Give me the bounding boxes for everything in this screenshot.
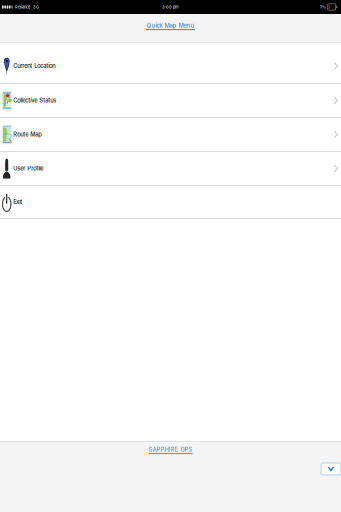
button[interactable]: Exit bbox=[0, 186, 341, 219]
button[interactable]: Route Map bbox=[0, 118, 341, 152]
staticText: Current Location bbox=[13, 62, 55, 69]
button[interactable]: User Profile bbox=[0, 152, 341, 186]
button[interactable]: Quick Map Menu bbox=[146, 22, 195, 30]
staticText: Reliance bbox=[15, 5, 30, 9]
button[interactable]: SAPPHIRE GPS bbox=[148, 446, 192, 454]
staticText: User Profile bbox=[13, 165, 43, 172]
staticText: 3G bbox=[33, 5, 39, 9]
staticText: Exit bbox=[13, 198, 22, 205]
staticText: SAPPHIRE GPS bbox=[148, 446, 192, 453]
staticText: Quick Map Menu bbox=[146, 22, 194, 29]
button[interactable]: Current Location bbox=[0, 43, 341, 84]
staticText: 7% bbox=[320, 5, 326, 9]
button[interactable]: Scroll down bbox=[321, 463, 341, 475]
button[interactable]: Collective Status bbox=[0, 84, 341, 118]
staticText: Route Map bbox=[13, 131, 42, 138]
staticText: Collective Status bbox=[13, 97, 56, 104]
staticText: 3:00 pm bbox=[162, 5, 179, 9]
